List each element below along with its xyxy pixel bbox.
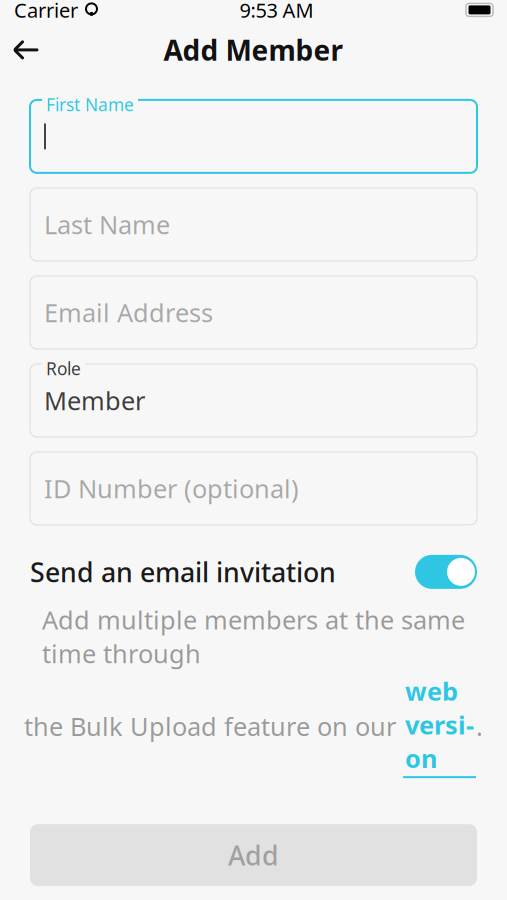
button[interactable]: Email Address (30, 276, 477, 349)
staticText: Email Address (44, 296, 213, 329)
button[interactable]: Last Name (30, 188, 477, 261)
staticText: Add multiple members at the same time th… (42, 603, 465, 670)
staticText: ID Number (optional) (44, 472, 299, 505)
staticText: 9:53 AM (239, 0, 313, 23)
staticText: Member (44, 384, 145, 417)
staticText: Carrier (14, 0, 78, 23)
staticText: . (476, 709, 483, 743)
staticText: Add Member (163, 31, 343, 68)
button[interactable]: First Name (30, 100, 477, 173)
button[interactable]: Back (0, 28, 52, 72)
button[interactable]: Add (30, 824, 477, 886)
staticText: First Name (46, 93, 134, 116)
staticText: Send an email invitation (30, 554, 336, 590)
staticText: Add (228, 837, 279, 873)
button[interactable]: web version (403, 674, 476, 778)
staticText: Last Name (44, 208, 170, 241)
button[interactable]: ID Number (optional) (30, 452, 477, 525)
staticText: Role (46, 357, 81, 380)
staticText: web version (405, 674, 474, 775)
button[interactable]: Member (30, 364, 477, 437)
staticText: the Bulk Upload feature on our (24, 709, 403, 743)
button[interactable]: Send an email invitation (30, 549, 477, 595)
